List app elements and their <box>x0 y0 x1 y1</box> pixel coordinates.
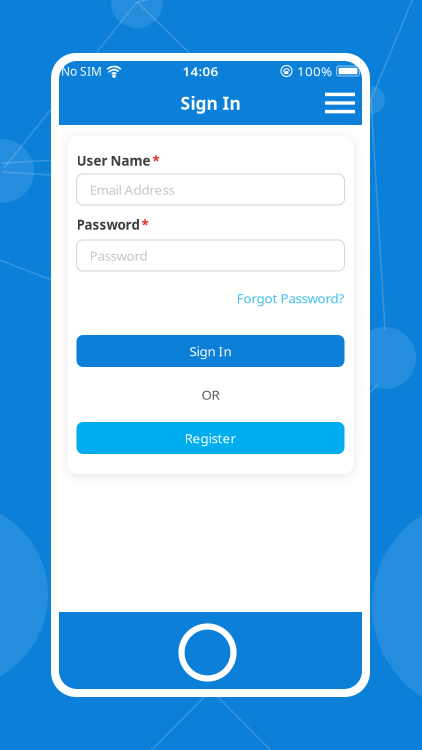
button[interactable]: Register <box>76 422 344 454</box>
staticText: * <box>141 216 148 233</box>
staticText: 14:06 <box>182 62 218 80</box>
staticText: User Name <box>76 152 150 169</box>
staticText: No SIM <box>61 63 102 79</box>
staticText: Password <box>76 216 139 233</box>
staticText: Sign In <box>189 342 231 360</box>
button[interactable]: Sign In <box>76 335 344 367</box>
staticText: Email Address <box>89 181 174 198</box>
staticText: Register <box>184 429 236 447</box>
staticText: Password <box>89 247 147 264</box>
staticText: Forgot Password? <box>236 289 344 307</box>
staticText: OR <box>201 386 219 403</box>
staticText: 100% <box>297 62 332 80</box>
staticText: * <box>152 152 159 169</box>
button[interactable]: Forgot Password? <box>236 289 344 307</box>
staticText: Sign In <box>180 91 240 114</box>
button[interactable]: Menu <box>318 84 362 121</box>
